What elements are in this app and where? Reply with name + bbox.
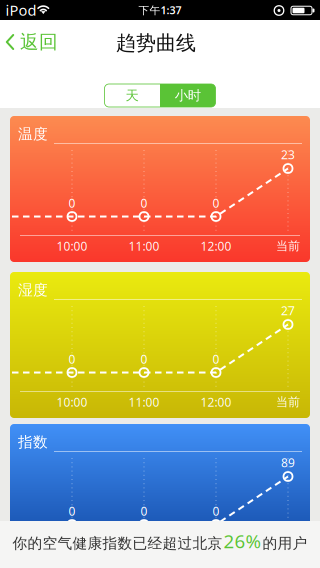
staticText: 0 [68, 503, 75, 519]
staticText: 趋势曲线 [116, 31, 196, 55]
staticText: 指数 [18, 433, 48, 451]
staticText: 0 [140, 195, 147, 211]
staticText: 的用户 [262, 534, 307, 552]
staticText: 11:00 [128, 238, 159, 254]
button[interactable]: 返回 [6, 30, 58, 53]
staticText: 0 [68, 195, 75, 211]
staticText: 11:00 [128, 394, 159, 410]
staticText: 0 [212, 351, 219, 367]
staticText: 湿度 [18, 281, 48, 299]
staticText: 26% [223, 529, 261, 553]
staticText: 当前 [276, 547, 300, 561]
staticText: 0 [212, 195, 219, 211]
staticText: 下午1:37 [138, 3, 181, 17]
staticText: 12:00 [200, 546, 231, 562]
staticText: 10:00 [56, 546, 87, 562]
staticText: 当前 [276, 239, 300, 253]
staticText: 89 [281, 454, 295, 470]
staticText: 0 [140, 351, 147, 367]
staticText: 11:00 [128, 546, 159, 562]
staticText: 10:00 [56, 394, 87, 410]
staticText: 天 [125, 87, 138, 104]
staticText: 小时 [175, 87, 201, 104]
staticText: 12:00 [200, 394, 231, 410]
staticText: 返回 [20, 30, 58, 53]
button[interactable]: 小时 [160, 84, 215, 107]
staticText: 温度 [18, 125, 48, 143]
staticText: 23 [281, 146, 295, 162]
staticText: 0 [140, 503, 147, 519]
staticText: iPod [5, 0, 36, 20]
staticText: 27 [281, 302, 295, 318]
staticText: 10:00 [56, 238, 87, 254]
staticText: 12:00 [200, 238, 231, 254]
staticText: 你的空气健康指数已经超过北京 [12, 534, 222, 552]
staticText: 0 [212, 503, 219, 519]
staticText: 当前 [276, 395, 300, 409]
button[interactable]: 天 [104, 84, 159, 107]
staticText: 0 [68, 351, 75, 367]
